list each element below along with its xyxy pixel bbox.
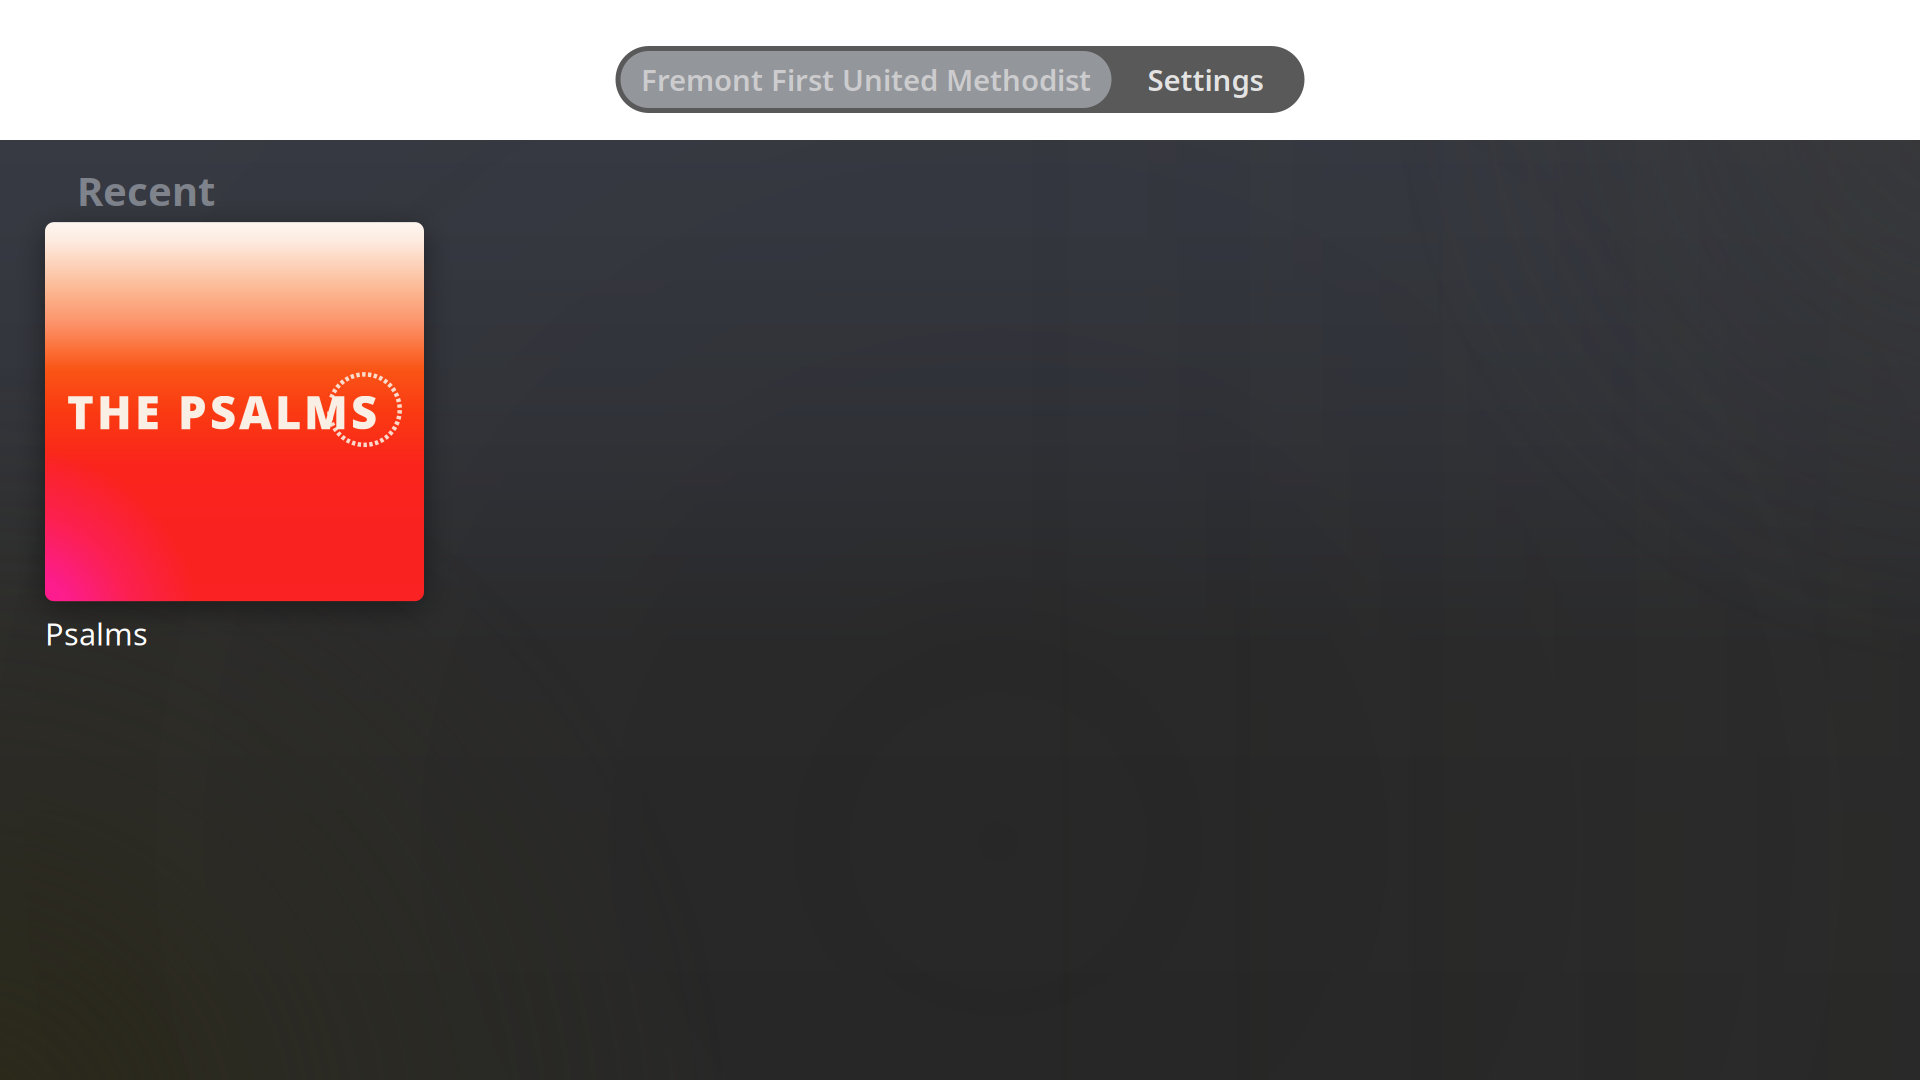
staticText: Psalms <box>45 613 148 654</box>
button[interactable]: Psalms <box>45 222 424 654</box>
staticText: Recent <box>77 164 215 217</box>
staticText: Fremont First United Methodist <box>641 60 1091 99</box>
staticText: THE PSALMS <box>67 381 377 442</box>
button[interactable]: Fremont First United Methodist <box>620 51 1111 108</box>
button[interactable]: Settings <box>1111 51 1299 108</box>
staticText: Settings <box>1147 60 1263 99</box>
